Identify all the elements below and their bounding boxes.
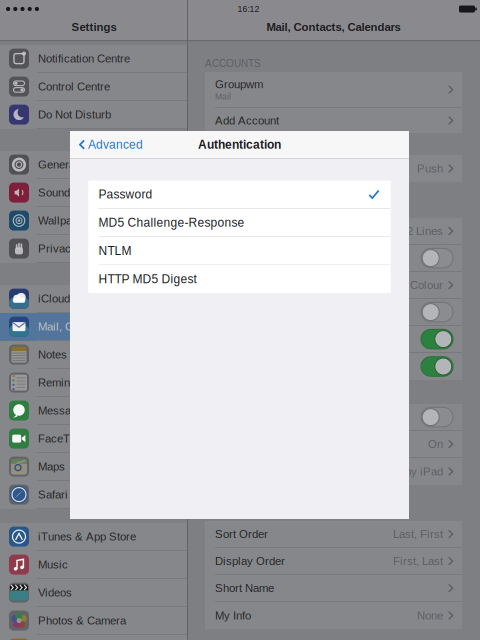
staticText: Messages: [38, 404, 89, 417]
button[interactable]: Notification Centre: [0, 45, 187, 72]
staticText: Push: [417, 162, 443, 175]
button[interactable]: Mail, Contacts, Calendars: [187, 14, 479, 40]
staticText: Videos: [38, 586, 72, 599]
staticText: Mail, Contacts, Calendars: [266, 21, 400, 33]
button[interactable]: Reminders: [0, 369, 187, 396]
staticText: Short Name: [215, 582, 274, 594]
staticText: Authentication: [198, 138, 281, 151]
button[interactable]: Control Centre: [0, 73, 187, 100]
staticText: Reminders: [38, 376, 92, 389]
button[interactable]: MD5 Challenge-Response: [88, 209, 390, 236]
button[interactable]: Preview: [205, 218, 462, 244]
button[interactable]: Always Bcc Myself: [205, 404, 462, 430]
button[interactable]: Safari: [0, 481, 187, 508]
button[interactable]: Display Order: [205, 548, 462, 574]
staticText: Mail, Contacts, Calendars: [38, 320, 166, 333]
button[interactable]: General: [0, 151, 187, 178]
button[interactable]: Short Name: [205, 575, 462, 601]
button[interactable]: Add Account: [205, 108, 462, 133]
staticText: None: [417, 609, 443, 622]
staticText: FaceTime: [38, 432, 88, 445]
staticText: First, Last: [393, 555, 443, 567]
staticText: Preview: [215, 225, 256, 237]
staticText: Settings: [71, 21, 116, 33]
button[interactable]: Ask Before Deleting: [205, 299, 462, 325]
button[interactable]: Messages: [0, 397, 187, 424]
button[interactable]: Mail, Contacts, Calendars: [0, 313, 187, 340]
button[interactable]: FaceTime: [0, 425, 187, 452]
button[interactable]: HTTP MD5 Digest: [88, 265, 390, 293]
staticText: Sounds: [38, 186, 76, 199]
staticText: Colour: [410, 279, 443, 291]
button[interactable]: Do Not Disturb: [0, 101, 187, 128]
button[interactable]: Groupwm: [205, 72, 462, 107]
staticText: 2 Lines: [407, 225, 443, 237]
staticText: Sort Order: [215, 528, 268, 540]
button[interactable]: My Info: [205, 602, 462, 629]
button[interactable]: Wallpapers & Brightness: [0, 207, 187, 234]
button[interactable]: Notes: [0, 341, 187, 368]
staticText: MD5 Challenge-Response: [98, 216, 244, 229]
button[interactable]: Advanced: [70, 131, 149, 158]
button[interactable]: Privacy: [0, 235, 187, 262]
button[interactable]: Increase Quote Level: [205, 431, 462, 457]
button[interactable]: iBooks: [0, 635, 187, 640]
staticText: My Info: [215, 609, 251, 622]
button[interactable]: Maps: [0, 453, 187, 480]
button[interactable]: iTunes & App Store: [0, 523, 187, 550]
staticText: Sent from my iPad: [351, 465, 443, 478]
staticText: NTLM: [98, 244, 131, 257]
button[interactable]: Organise By Thread: [205, 353, 462, 380]
button[interactable]: Show To/Cc Label: [205, 245, 462, 271]
button[interactable]: Password: [88, 181, 390, 208]
staticText: Last, First: [393, 528, 443, 540]
staticText: Do Not Disturb: [38, 108, 111, 121]
button[interactable]: Music: [0, 551, 187, 578]
staticText: Advanced: [88, 138, 143, 151]
staticText: iCloud: [38, 292, 70, 305]
staticText: Groupwm: [215, 78, 263, 91]
staticText: Safari: [38, 488, 68, 501]
staticText: Control Centre: [38, 80, 110, 93]
button[interactable]: Load Remote Images: [205, 326, 462, 352]
button[interactable]: Photos & Camera: [0, 607, 187, 634]
button[interactable]: Fetch New Data: [205, 155, 462, 182]
button[interactable]: Sort Order: [205, 521, 462, 547]
staticText: Privacy: [38, 242, 77, 255]
staticText: Wallpapers & Brightness: [38, 214, 162, 227]
button[interactable]: Signature: [205, 458, 462, 485]
staticText: Mail: [215, 92, 231, 101]
staticText: Notes: [38, 348, 67, 361]
staticText: Password: [98, 188, 152, 201]
button[interactable]: Settings: [0, 14, 187, 40]
staticText: Maps: [38, 460, 65, 473]
button[interactable]: Flag Style: [205, 272, 462, 298]
staticText: General: [38, 158, 78, 171]
staticText: Display Order: [215, 555, 285, 567]
button[interactable]: Sounds: [0, 179, 187, 206]
staticText: On: [428, 438, 443, 450]
button[interactable]: NTLM: [88, 237, 390, 265]
staticText: 16:12: [237, 4, 259, 14]
staticText: iTunes & App Store: [38, 530, 136, 543]
staticText: HTTP MD5 Digest: [98, 272, 196, 286]
staticText: Music: [38, 558, 68, 571]
staticText: Add Account: [215, 114, 279, 127]
staticText: ACCOUNTS: [205, 58, 261, 69]
staticText: Notification Centre: [38, 52, 130, 65]
button[interactable]: Videos: [0, 579, 187, 606]
staticText: Photos & Camera: [38, 614, 126, 627]
button[interactable]: iCloud: [0, 285, 187, 312]
